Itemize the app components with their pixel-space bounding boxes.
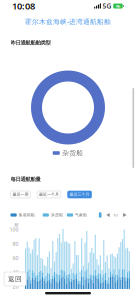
staticText: 5G: [103, 2, 112, 10]
staticText: 最近一周: [12, 192, 28, 197]
button[interactable]: 最近三个月: [68, 191, 91, 198]
staticText: 10:08: [12, 0, 35, 12]
staticText: 80: [12, 240, 18, 247]
button[interactable]: 返回: [4, 272, 26, 286]
staticText: 100: [9, 226, 18, 233]
staticText: 昨日通航船舶类型: [10, 39, 50, 46]
staticText: 86: [116, 3, 120, 9]
staticText: 霍尔木兹海峡-进湾通航船舶: [25, 17, 111, 26]
staticText: 集装箱船: [19, 212, 35, 217]
staticText: 20: [12, 283, 18, 290]
staticText: 40: [12, 269, 18, 276]
staticText: 艘: [14, 222, 18, 227]
staticText: 最近一个月: [39, 192, 59, 197]
staticText: 杂货船: [51, 212, 63, 217]
staticText: 1/7: [113, 212, 118, 218]
button[interactable]: 最近一个月: [37, 191, 61, 198]
staticText: 60: [12, 254, 18, 262]
staticText: 返回: [8, 275, 22, 283]
staticText: 气象船: [75, 212, 87, 217]
staticText: 每日通航船量: [10, 176, 40, 183]
staticText: 最近三个月: [70, 192, 90, 197]
button[interactable]: 最近一周: [10, 191, 30, 198]
staticText: 杂货船: [62, 149, 83, 157]
